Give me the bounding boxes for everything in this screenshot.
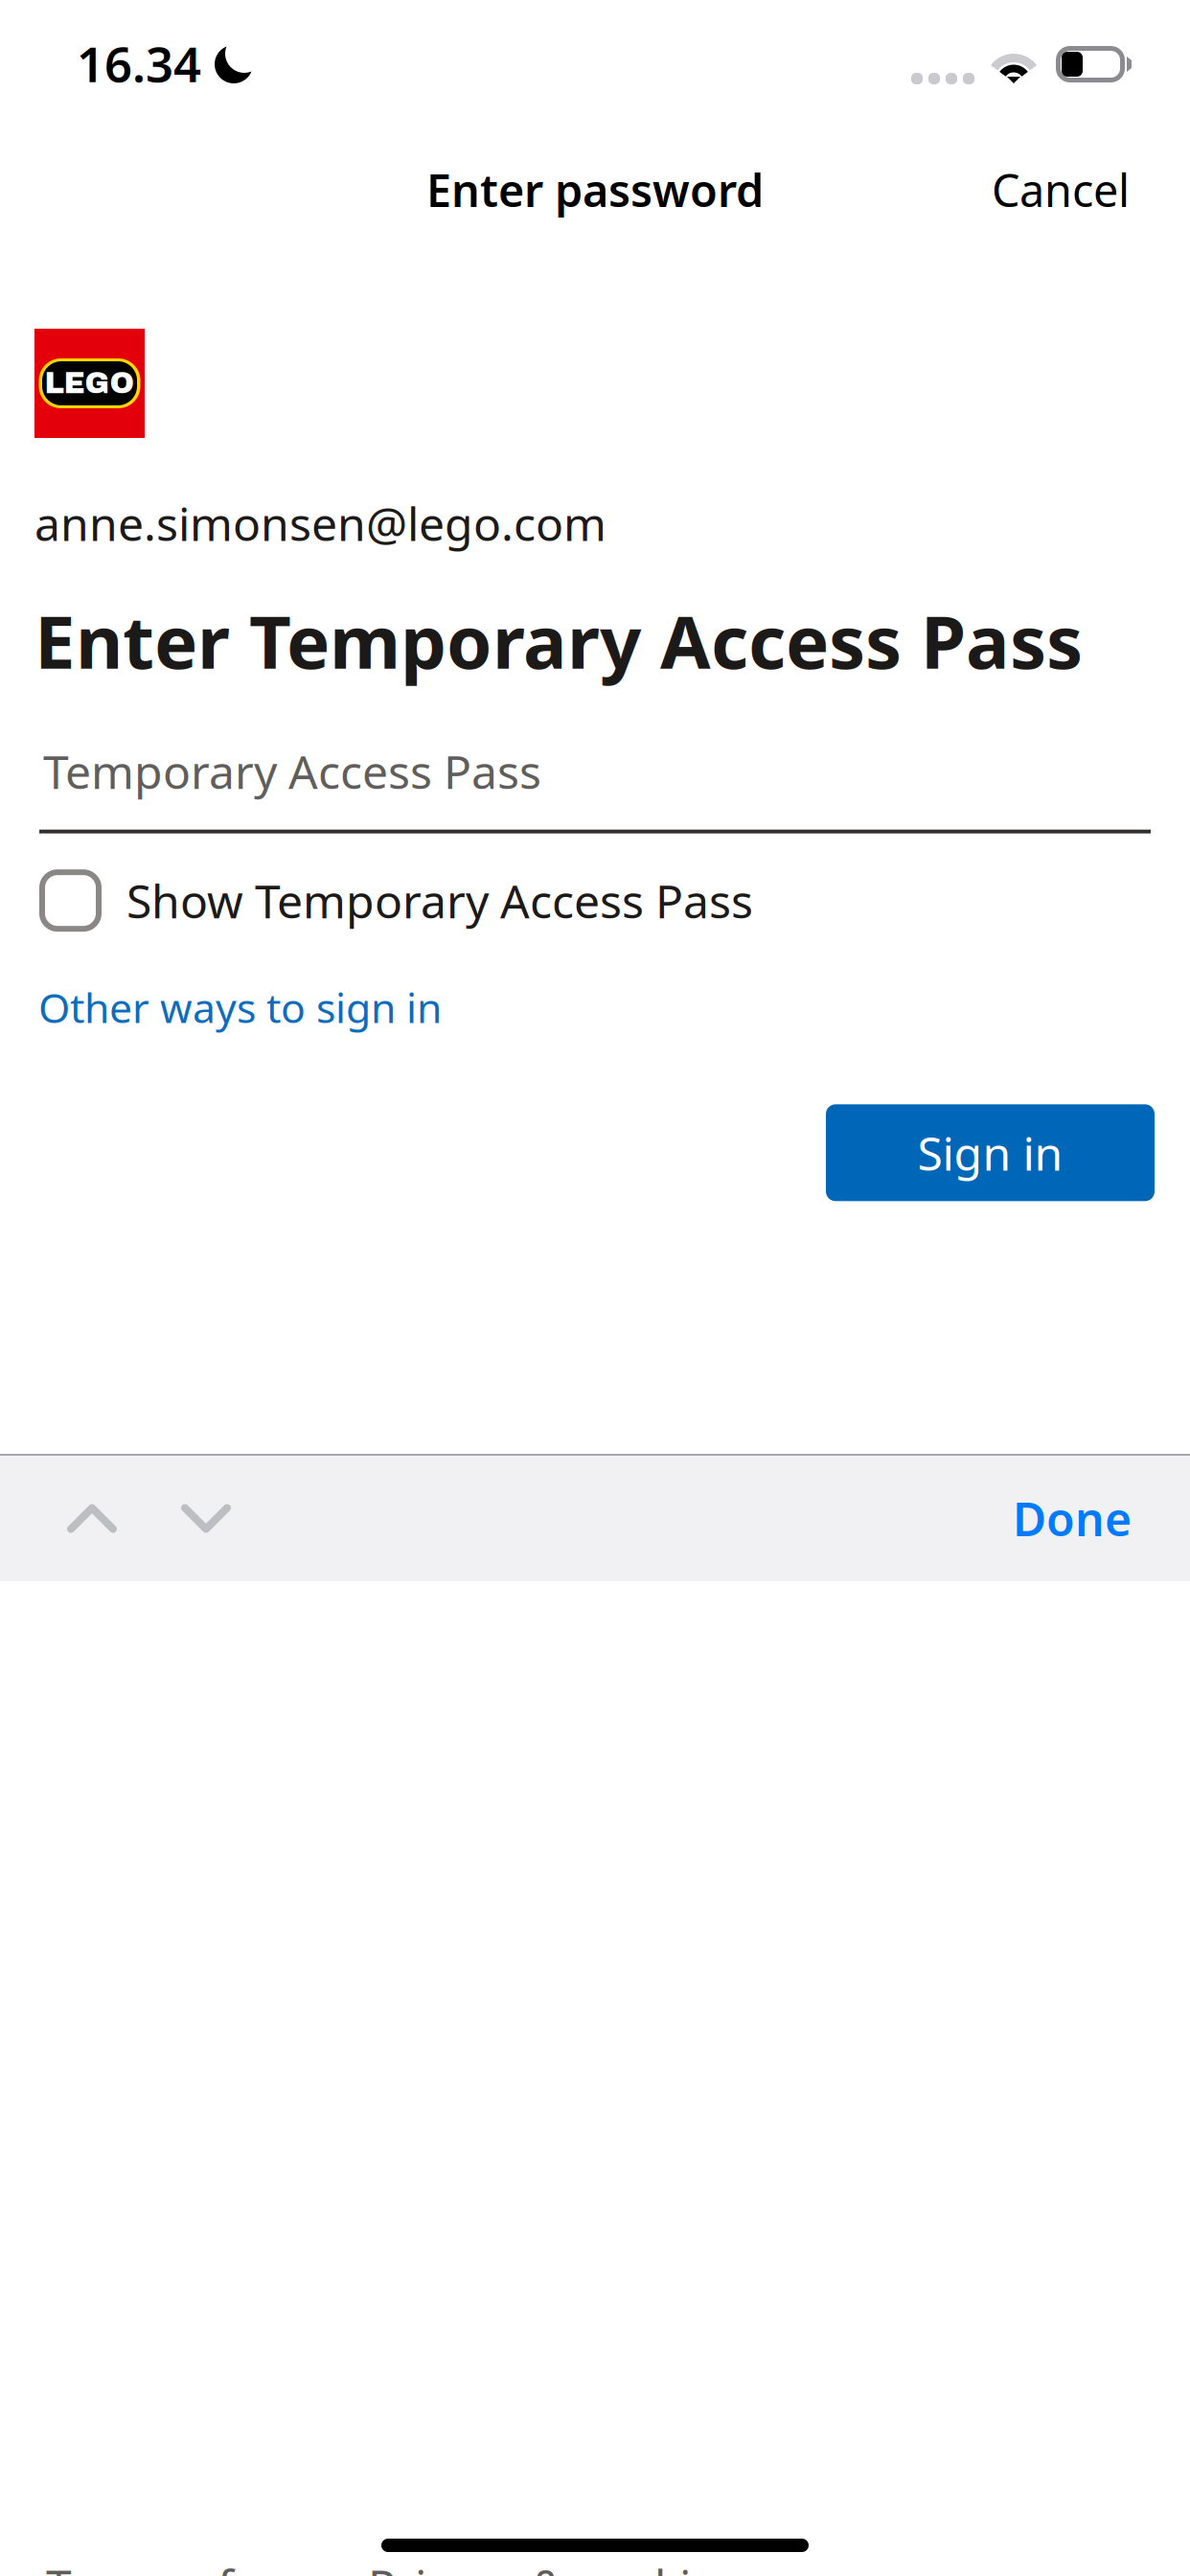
button[interactable]: Previous field	[57, 1492, 127, 1545]
staticText: Other ways to sign in	[38, 980, 442, 1034]
staticText: Terms of use	[46, 2555, 322, 2576]
staticText: Temporary Access Pass	[43, 741, 541, 802]
staticText: Show Temporary Access Pass	[126, 870, 753, 931]
button[interactable]: Sign in	[826, 1104, 1155, 1201]
staticText: LEGO	[45, 367, 135, 399]
staticText: anne.simonsen@lego.com	[34, 493, 606, 554]
staticText: Enter Temporary Access Pass	[34, 592, 1083, 689]
button[interactable]: Cancel	[984, 147, 1137, 233]
staticText: Cancel	[992, 160, 1130, 219]
staticText: Privacy & cookies	[368, 2555, 739, 2576]
button[interactable]: Done	[1003, 1476, 1141, 1560]
staticText: 16.34	[77, 31, 201, 96]
staticText: Enter password	[426, 160, 764, 219]
button[interactable]: Show Temporary Access Pass	[34, 870, 1190, 931]
staticText: Done	[1013, 1488, 1132, 1549]
staticText: Sign in	[917, 1122, 1063, 1183]
button[interactable]: Privacy & cookies	[368, 2555, 739, 2576]
button[interactable]: Next field	[171, 1492, 241, 1545]
button[interactable]: Other ways to sign in	[34, 980, 442, 1034]
button[interactable]: Terms of use	[46, 2555, 322, 2576]
